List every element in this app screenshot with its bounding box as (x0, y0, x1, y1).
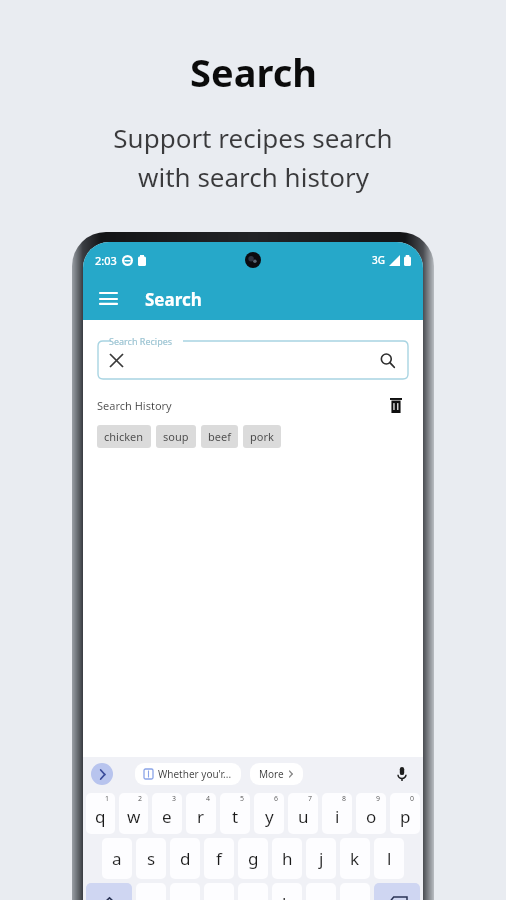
staticText: Search Recipes (109, 335, 173, 347)
staticText: 8 (342, 794, 347, 804)
button[interactable]: k (340, 838, 370, 879)
staticText: q (95, 805, 106, 828)
staticText: l (387, 847, 392, 870)
staticText: Search (190, 46, 317, 98)
staticText: k (350, 847, 360, 870)
staticText: Support recipes search (113, 120, 393, 155)
staticText: w (127, 805, 141, 828)
button[interactable]: More (250, 763, 303, 785)
staticText: 9 (376, 794, 381, 804)
button[interactable]: Whether you'r... (135, 763, 241, 785)
button[interactable]: Shift (86, 883, 132, 900)
staticText: 3 (172, 794, 177, 804)
staticText: j (319, 847, 324, 870)
staticText: More (259, 767, 284, 781)
staticText: chicken (104, 429, 144, 444)
staticText: with search history (138, 159, 369, 194)
button[interactable]: 0 (390, 793, 420, 834)
staticText: d (180, 847, 191, 870)
button[interactable]: chicken (97, 425, 151, 448)
staticText: 2 (138, 794, 143, 804)
staticText: beef (208, 429, 231, 444)
staticText: s (147, 847, 156, 870)
button[interactable]: 1 (86, 793, 115, 834)
staticText: y (265, 805, 274, 828)
staticText: Search History (97, 398, 172, 413)
staticText: pork (250, 429, 274, 444)
button[interactable]: Open navigation menu (91, 282, 125, 316)
staticText: r (197, 805, 205, 828)
staticText: 3G (372, 253, 385, 267)
staticText: 4 (206, 794, 211, 804)
button[interactable]: 7 (288, 793, 318, 834)
staticText: b (282, 892, 293, 900)
button[interactable]: 4 (186, 793, 216, 834)
button[interactable]: 2 (119, 793, 148, 834)
button[interactable]: soup (156, 425, 196, 448)
staticText: h (282, 847, 293, 870)
button[interactable]: Search (373, 346, 401, 374)
staticText: a (112, 847, 122, 870)
button[interactable]: g (238, 838, 268, 879)
staticText: i (335, 805, 340, 828)
button[interactable]: 6 (254, 793, 284, 834)
button[interactable]: b (272, 883, 302, 900)
staticText: Whether you'r... (158, 767, 232, 781)
button[interactable]: Clear text (103, 347, 129, 373)
staticText: soup (163, 429, 189, 444)
button[interactable]: Search Recipes (97, 334, 409, 380)
button[interactable]: Backspace (374, 883, 420, 900)
button[interactable]: Clear search history (383, 392, 409, 418)
button[interactable]: Voice input (389, 761, 415, 787)
button[interactable]: 3 (152, 793, 182, 834)
staticText: u (298, 805, 309, 828)
staticText: 5 (240, 794, 245, 804)
button[interactable]: j (306, 838, 336, 879)
button[interactable]: 8 (322, 793, 352, 834)
button[interactable]: f (204, 838, 234, 879)
button[interactable]: s (136, 838, 166, 879)
button[interactable]: h (272, 838, 302, 879)
staticText: o (366, 805, 377, 828)
button[interactable]: 5 (220, 793, 250, 834)
staticText: f (216, 847, 222, 870)
staticText: 6 (274, 794, 279, 804)
staticText: 2:03 (95, 253, 117, 268)
button[interactable]: pork (243, 425, 281, 448)
staticText: g (248, 847, 259, 870)
button[interactable]: l (374, 838, 404, 879)
staticText: t (232, 805, 239, 828)
button[interactable]: beef (201, 425, 238, 448)
staticText: e (162, 805, 172, 828)
button[interactable]: Expand toolbar (91, 763, 113, 785)
button[interactable]: d (170, 838, 200, 879)
staticText: Search (145, 288, 202, 311)
staticText: 7 (308, 794, 313, 804)
staticText: 0 (410, 794, 415, 804)
button[interactable]: a (102, 838, 132, 879)
staticText: p (400, 805, 411, 828)
button[interactable]: 9 (356, 793, 386, 834)
staticText: 1 (105, 794, 110, 804)
